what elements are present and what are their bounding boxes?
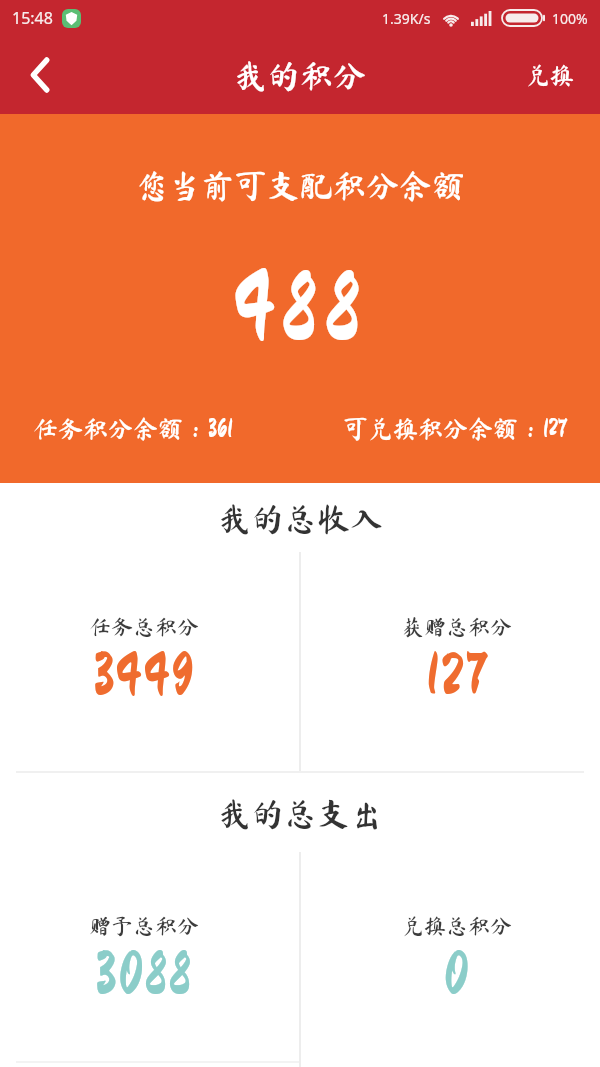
button[interactable]: 任务总积分 bbox=[0, 543, 300, 771]
staticText: 获赠总积分 bbox=[402, 616, 513, 638]
staticText: 我的积分 bbox=[234, 59, 366, 92]
button[interactable]: 兑换 bbox=[520, 57, 580, 93]
staticText: 3449 bbox=[93, 645, 195, 705]
staticText: 1.39K/s bbox=[382, 9, 431, 28]
staticText: 可兑换积分余额：127 bbox=[343, 416, 567, 441]
staticText: 3088 bbox=[95, 944, 193, 1004]
button[interactable]: 赠予总积分 bbox=[0, 838, 300, 1067]
button[interactable]: 兑换总积分 bbox=[300, 838, 600, 1067]
staticText: 任务积分余额：361 bbox=[33, 416, 233, 441]
staticText: 任务总积分 bbox=[89, 616, 200, 638]
staticText: 15:48 bbox=[12, 7, 53, 29]
staticText: 我的总收入 bbox=[218, 502, 383, 535]
staticText: 我的总支出 bbox=[218, 797, 383, 830]
staticText: 488 bbox=[232, 261, 369, 357]
staticText: 兑换 bbox=[526, 63, 574, 87]
staticText: 0 bbox=[444, 944, 471, 1004]
button[interactable]: 获赠总积分 bbox=[300, 543, 600, 771]
staticText: 兑换总积分 bbox=[402, 915, 513, 937]
staticText: 您当前可支配积分余额 bbox=[135, 169, 465, 202]
button[interactable] bbox=[18, 53, 62, 97]
staticText: 赠予总积分 bbox=[89, 915, 200, 937]
staticText: 100% bbox=[552, 9, 588, 28]
staticText: 127 bbox=[426, 645, 488, 705]
